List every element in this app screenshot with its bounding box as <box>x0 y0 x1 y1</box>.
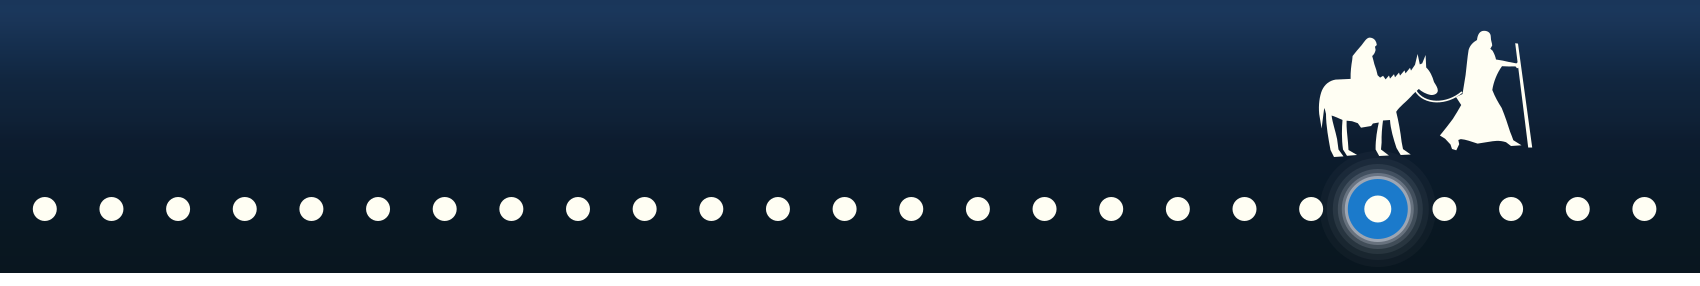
button[interactable]: Chapter 23 <box>1485 183 1537 235</box>
button[interactable]: Chapter 9 <box>552 183 604 235</box>
button[interactable]: Chapter 6 <box>352 183 404 235</box>
button[interactable]: Chapter 17 <box>1085 183 1137 235</box>
button[interactable]: Chapter 13 <box>819 183 871 235</box>
button[interactable]: Chapter 20 <box>1285 183 1337 235</box>
button[interactable]: Chapter 12 <box>752 183 804 235</box>
button[interactable]: Chapter 19 <box>1218 183 1270 235</box>
button[interactable]: Chapter 18 <box>1152 183 1204 235</box>
button[interactable]: Chapter 22 <box>1418 183 1470 235</box>
button[interactable]: Chapter 8 <box>485 183 537 235</box>
button[interactable]: Chapter 25 <box>1618 183 1670 235</box>
button[interactable]: Chapter 7 <box>419 183 471 235</box>
button[interactable]: Chapter 16 <box>1019 183 1071 235</box>
button[interactable]: Chapter 4 <box>219 183 271 235</box>
button[interactable]: Current day <box>1316 147 1440 271</box>
button[interactable]: Chapter 1 <box>19 183 71 235</box>
button[interactable]: Chapter 15 <box>952 183 1004 235</box>
button[interactable]: Chapter 2 <box>85 183 137 235</box>
button[interactable]: Chapter 24 <box>1552 183 1604 235</box>
button[interactable]: Chapter 10 <box>619 183 671 235</box>
button[interactable]: Chapter 3 <box>152 183 204 235</box>
button[interactable]: Chapter 11 <box>685 183 737 235</box>
button[interactable]: Chapter 14 <box>885 183 937 235</box>
button[interactable]: Chapter 5 <box>285 183 337 235</box>
